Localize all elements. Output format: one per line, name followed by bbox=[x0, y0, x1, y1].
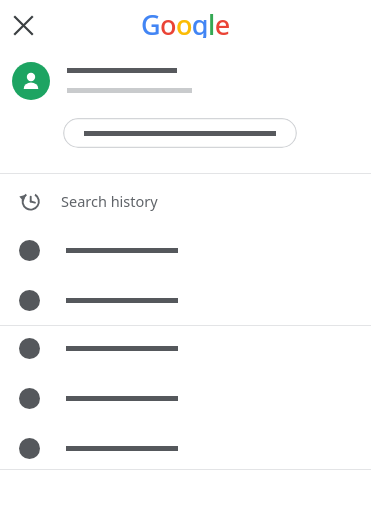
staticText: Google bbox=[141, 6, 230, 38]
button[interactable] bbox=[0, 324, 371, 372]
button[interactable] bbox=[0, 374, 371, 422]
button[interactable] bbox=[0, 226, 371, 274]
button[interactable] bbox=[0, 424, 371, 472]
button[interactable] bbox=[0, 276, 371, 324]
staticText: Search history bbox=[61, 191, 158, 211]
button[interactable]: Search bbox=[63, 118, 297, 148]
button[interactable]: Close bbox=[6, 8, 40, 42]
button[interactable]: Account bbox=[12, 62, 50, 100]
button[interactable]: Search history bbox=[0, 180, 371, 222]
